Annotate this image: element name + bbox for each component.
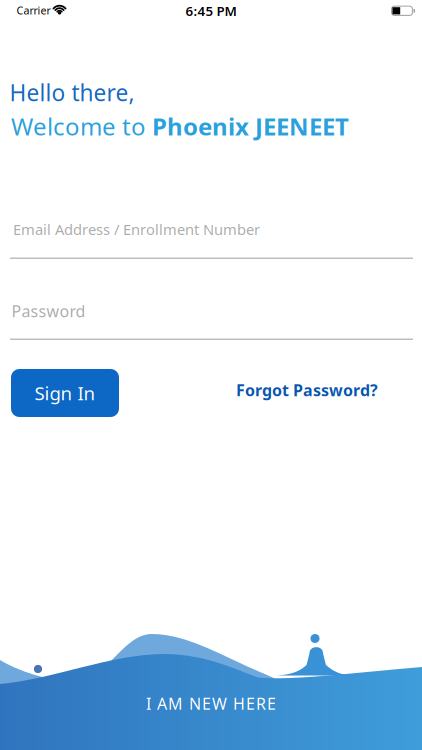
button[interactable]: I AM NEW HERE — [0, 693, 422, 714]
button[interactable]: Forgot Password? — [236, 379, 378, 401]
button[interactable]: Sign In — [11, 369, 119, 417]
staticText: Carrier — [16, 3, 50, 18]
staticText: Hello there, — [9, 77, 134, 107]
button[interactable]: Password — [10, 300, 422, 340]
staticText: I AM NEW HERE — [146, 693, 276, 714]
button[interactable]: Email Address / Enrollment Number — [10, 219, 422, 259]
staticText: Email Address / Enrollment Number — [13, 219, 260, 239]
staticText: Welcome to Phoenix JEENEET — [11, 110, 349, 142]
staticText: 6:45 PM — [185, 2, 236, 20]
staticText: Forgot Password? — [236, 379, 378, 401]
staticText: Sign In — [34, 381, 95, 405]
staticText: Password — [11, 300, 85, 322]
